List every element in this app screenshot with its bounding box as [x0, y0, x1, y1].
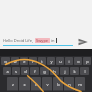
staticText: e: [23, 59, 26, 64]
button[interactable]: h: [50, 67, 59, 75]
button[interactable]: j: [60, 67, 69, 75]
button[interactable]: a: [3, 67, 11, 75]
staticText: c: [35, 82, 37, 87]
staticText: m: [78, 82, 82, 87]
staticText: v: [46, 82, 49, 87]
button[interactable]: k: [70, 67, 79, 75]
staticText: t: [41, 59, 43, 64]
staticText: l: [84, 69, 86, 74]
staticText: u: [59, 59, 62, 64]
button[interactable]: o: [74, 57, 82, 65]
button[interactable]: n: [64, 77, 74, 91]
button[interactable]: x: [19, 77, 30, 91]
staticText: j: [64, 69, 66, 74]
button[interactable]: u: [56, 57, 64, 65]
staticText: p: [86, 59, 89, 64]
staticText: in: [50, 38, 55, 43]
staticText: h: [53, 69, 56, 74]
staticText: Swype: [36, 38, 49, 43]
button[interactable]: w: [11, 57, 19, 65]
button[interactable]: d: [21, 67, 29, 75]
staticText: q: [4, 59, 7, 64]
staticText: x: [23, 82, 26, 87]
button[interactable]: e: [20, 57, 28, 65]
button[interactable]: l: [80, 67, 89, 75]
button[interactable]: m: [75, 77, 85, 91]
staticText: g: [43, 69, 46, 74]
staticText: o: [77, 59, 80, 64]
button[interactable]: t: [38, 57, 46, 65]
staticText: y: [50, 59, 53, 64]
staticText: a: [6, 69, 9, 74]
button[interactable]: i: [65, 57, 73, 65]
button[interactable]: z: [7, 77, 18, 91]
staticText: z: [12, 82, 14, 87]
staticText: s: [15, 69, 17, 74]
button[interactable]: b: [53, 77, 63, 91]
button[interactable]: r: [29, 57, 37, 65]
button[interactable]: g: [40, 67, 49, 75]
button[interactable]: v: [42, 77, 52, 91]
staticText: k: [73, 69, 76, 74]
button[interactable]: q: [1, 57, 10, 65]
button[interactable]: y: [47, 57, 55, 65]
staticText: Hello Droid Life,: [3, 38, 35, 43]
button[interactable]: c: [31, 77, 41, 91]
staticText: b: [57, 82, 60, 87]
button[interactable]: s: [12, 67, 20, 75]
staticText: f: [34, 69, 36, 74]
staticText: n: [68, 82, 71, 87]
staticText: r: [32, 59, 34, 64]
staticText: i: [68, 59, 70, 64]
button[interactable]: Send: [76, 35, 90, 49]
staticText: d: [24, 69, 27, 74]
button[interactable]: p: [83, 57, 91, 65]
button[interactable]: Hello Droid Life,: [3, 38, 73, 46]
button[interactable]: f: [30, 67, 39, 75]
staticText: w: [13, 59, 17, 64]
